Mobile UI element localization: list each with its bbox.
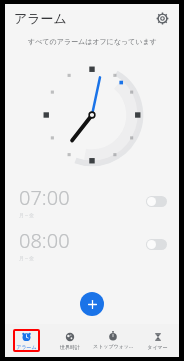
staticText: ストップウォッ…	[93, 343, 133, 350]
button[interactable]: アラーム	[16, 331, 37, 350]
staticText: 07:00	[19, 184, 70, 211]
button[interactable]: タイマー	[147, 332, 168, 350]
staticText: タイマー	[147, 344, 168, 350]
button[interactable]: Toggle alarm 08:00	[146, 239, 167, 250]
staticText: 08:00	[19, 227, 70, 254]
button[interactable]: Settings	[151, 7, 173, 29]
staticText: すべてのアラームはオフになっています	[28, 37, 157, 46]
button[interactable]: Add alarm	[80, 292, 104, 316]
button[interactable]: 08:00	[5, 223, 179, 265]
staticText: 月～金	[19, 212, 34, 218]
button[interactable]: ストップウォッ…	[93, 331, 133, 350]
staticText: 世界時計	[60, 344, 80, 350]
button[interactable]: Toggle alarm 07:00	[146, 196, 167, 207]
staticText: アラーム	[16, 344, 37, 350]
staticText: アラーム	[14, 10, 67, 26]
button[interactable]: 世界時計	[60, 332, 80, 350]
staticText: 月～金	[19, 255, 34, 261]
button[interactable]: 07:00	[5, 180, 179, 222]
